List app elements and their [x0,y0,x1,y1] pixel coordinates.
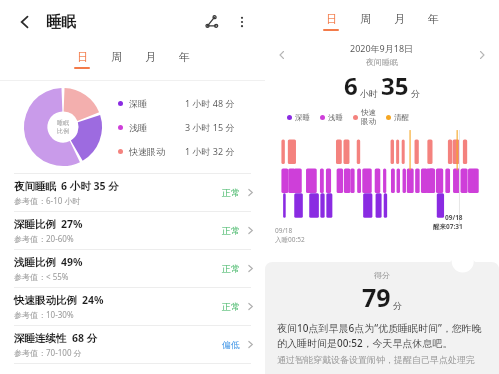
button[interactable]: 浅睡比例 [0,250,265,288]
staticText: 浅睡 [328,113,343,122]
staticText: 09/18 [275,226,293,235]
staticText: 正常 [222,187,240,198]
staticText: 周 [360,12,371,26]
button[interactable]: Share [197,7,227,37]
staticText: 79 [362,280,391,314]
staticText: 09/18 [445,213,463,222]
staticText: 月 [145,50,156,64]
button[interactable]: 深睡比例 [0,212,265,250]
staticText: 1 小时 48 分 [185,97,235,109]
staticText: 分 [393,300,402,311]
button[interactable]: More options [229,9,255,35]
staticText: 夜间睡眠 [14,180,56,193]
staticText: 快速 [361,108,376,117]
staticText: 年 [179,50,190,64]
button[interactable]: 年 [416,8,450,34]
staticText: 参考值：< 55% [14,271,69,282]
button[interactable]: 日 [65,44,99,74]
staticText: 日 [77,50,88,64]
staticText: 35 [381,69,409,102]
staticText: 比例 [57,127,69,135]
staticText: 浅睡比例 [14,256,56,269]
button[interactable]: 深睡连续性 [0,326,265,364]
staticText: 得分 [374,270,390,280]
staticText: 偏低 [222,339,240,350]
button[interactable]: 快速眼动比例 [0,288,265,326]
staticText: 深睡连续性 [14,332,67,345]
staticText: 浅睡 [129,122,147,133]
staticText: 睡眠 [57,119,69,127]
staticText: 24% [82,293,104,307]
button[interactable]: 日 [314,8,348,34]
staticText: 深睡 [129,98,147,109]
staticText: 夜间睡眠 [366,57,398,67]
button[interactable]: 月 [133,44,167,74]
button[interactable]: 周 [348,8,382,34]
staticText: 2020年9月18日 [350,42,414,54]
staticText: 深睡比例 [14,218,56,231]
button[interactable]: 夜间睡眠 [0,174,265,212]
staticText: 月 [394,12,405,26]
staticText: 睡眠 [46,13,76,32]
staticText: 深睡 [295,113,310,122]
staticText: 27% [61,217,83,231]
staticText: 清醒 [394,113,409,122]
button[interactable]: 年 [167,44,201,74]
staticText: 参考值：70-100 分 [14,347,82,358]
staticText: 3 小时 15 分 [185,121,235,133]
staticText: 6 [344,69,358,102]
staticText: 夜间10点到早晨6点为“优质睡眠时间”，您昨晚的入睡时间是00:52，今天早点休… [277,321,487,350]
button[interactable]: Back [10,7,40,37]
staticText: 正常 [222,225,240,236]
staticText: 正常 [222,263,240,274]
staticText: 醒来07:31 [433,222,463,231]
staticText: 49% [61,255,83,269]
staticText: 1 小时 32 分 [185,145,235,157]
button[interactable]: Next day [473,46,491,64]
button[interactable]: 月 [382,8,416,34]
staticText: 参考值：6-10 小时 [14,195,81,206]
staticText: 小时 [360,88,378,99]
staticText: 6 小时 35 分 [61,179,119,193]
staticText: 年 [428,12,439,26]
staticText: 日 [326,12,337,26]
staticText: 快速眼动 [129,146,165,157]
staticText: 通过智能穿戴设备设置闹钟，提醒自己早点处理完 [277,354,475,365]
staticText: 周 [111,50,122,64]
staticText: 快速眼动比例 [14,294,77,307]
staticText: 参考值：20-60% [14,233,74,244]
button[interactable]: 周 [99,44,133,74]
staticText: 68 分 [72,331,98,345]
staticText: 参考值：10-30% [14,309,74,320]
button[interactable]: Previous day [273,46,291,64]
staticText: 入睡00:52 [275,235,305,244]
staticText: 眼动 [361,117,376,126]
staticText: 正常 [222,301,240,312]
staticText: 分 [411,88,420,99]
